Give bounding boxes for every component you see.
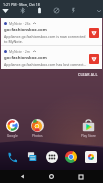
staticText: 1:21 PM · Mon, Oct 18	[3, 2, 40, 7]
staticText: gx=fashionsbox.com	[4, 55, 47, 61]
staticText: MyNote · 2m	[9, 49, 31, 54]
button[interactable]: Expand	[95, 7, 102, 14]
button[interactable]: Recent apps	[74, 170, 87, 183]
staticText: CLEAR ALL	[78, 72, 98, 77]
staticText: MyNote · 26s	[9, 21, 31, 26]
button[interactable]: MyNote · 26s	[1, 18, 102, 45]
button[interactable]: Battery saver	[35, 6, 43, 14]
staticText: Appliance.gx.fashionsbox.com has lost co…	[4, 62, 87, 67]
button[interactable]: Wi-Fi	[1, 6, 9, 14]
staticText: Appliance.gx.fashionsbox.com is now conn…	[4, 34, 87, 44]
button[interactable]: Do not disturb	[52, 6, 60, 14]
staticText: Google	[7, 134, 18, 138]
button[interactable]: Camera	[83, 149, 99, 165]
button[interactable]: Google	[0, 118, 25, 139]
button[interactable]: Messages	[24, 149, 40, 165]
button[interactable]: Back	[16, 170, 29, 183]
staticText: Play Store	[81, 134, 96, 138]
button[interactable]: Chrome	[63, 149, 79, 165]
button[interactable]: Flashlight	[69, 6, 77, 14]
button[interactable]: All apps	[44, 149, 60, 165]
staticText: Photos	[32, 134, 43, 138]
button[interactable]: Home	[45, 170, 58, 183]
button[interactable]: Photos	[25, 118, 50, 139]
button[interactable]: Bluetooth	[18, 6, 26, 14]
button[interactable]: Play Store	[76, 118, 101, 139]
button[interactable]: Phone	[4, 149, 20, 165]
staticText: gx=fashionsbox.com	[4, 27, 47, 33]
button[interactable]: CLEAR ALL	[76, 70, 100, 79]
button[interactable]: MyNote · 2m	[1, 46, 102, 69]
